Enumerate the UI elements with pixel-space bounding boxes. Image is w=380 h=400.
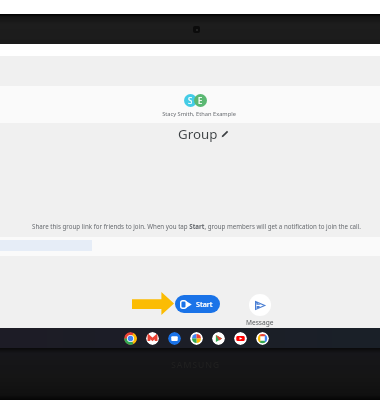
button[interactable]: Message [242, 294, 278, 327]
button[interactable]: App 1 [124, 332, 137, 345]
button[interactable]: App 7 [256, 332, 269, 345]
button[interactable]: App 4 [190, 332, 203, 345]
staticText: S [188, 95, 193, 106]
button[interactable]: App 5 [212, 332, 225, 345]
button[interactable]: Group [178, 125, 229, 143]
button[interactable]: App 6 [234, 332, 247, 345]
button[interactable]: App 2 [146, 332, 159, 345]
staticText: Share this group link for friends to joi… [32, 222, 361, 230]
button[interactable]: App 3 [168, 332, 181, 345]
other: Edit group name [221, 130, 229, 138]
staticText: Stacy Smith, Ethan Example [39, 110, 359, 118]
staticText: Start [196, 299, 213, 309]
staticText: E [198, 95, 203, 106]
button[interactable]: Start [175, 295, 220, 313]
staticText: Group [178, 125, 218, 143]
staticText: Message [246, 318, 274, 327]
